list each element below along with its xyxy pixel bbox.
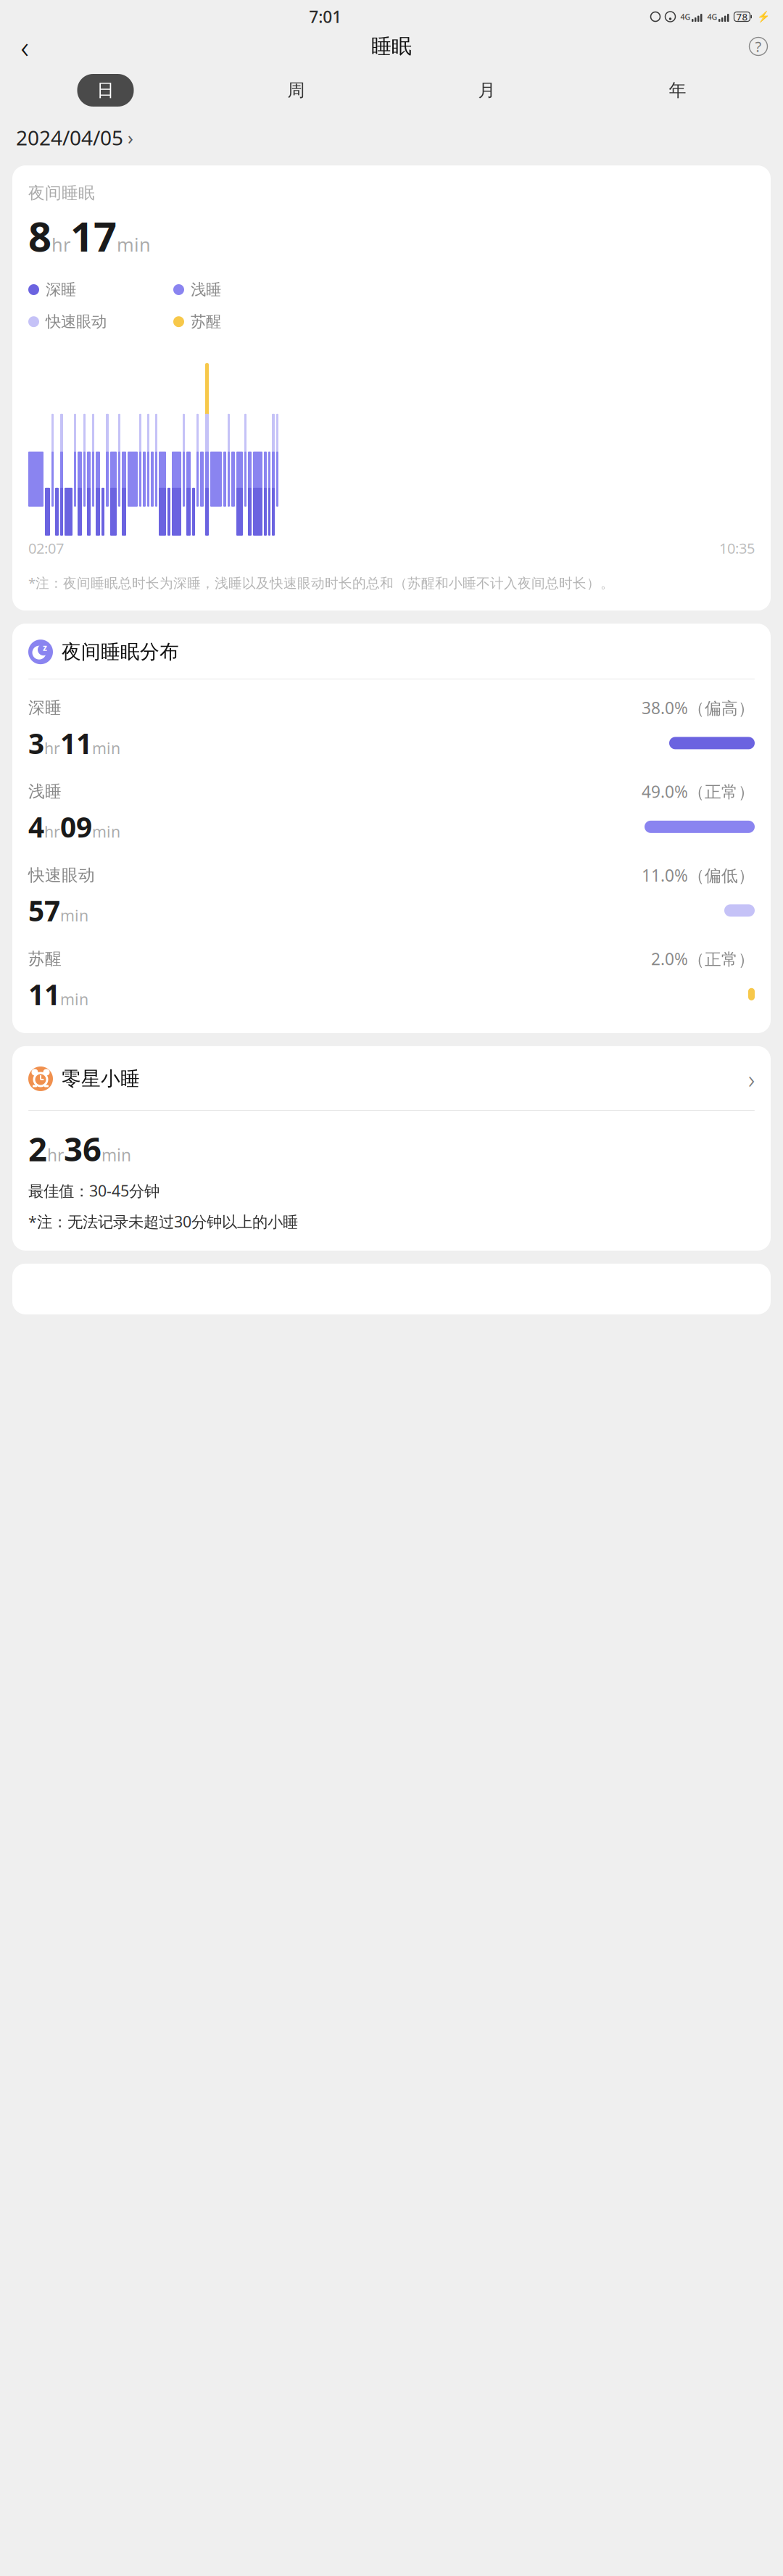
staticText: 09 [60,808,92,845]
staticText: › [748,1062,755,1095]
staticText: 最佳值：30-45分钟 [28,1180,159,1201]
staticText: min [101,1144,131,1166]
staticText: 快速眼动 [46,312,107,331]
button[interactable]: 周 [201,74,391,107]
staticText: 周 [287,80,305,101]
staticText: 深睡 [46,280,76,299]
staticText: 浅睡 [28,781,62,802]
button[interactable]: Back [9,30,41,62]
staticText: hr [44,821,60,842]
staticText: 3 [28,724,44,762]
staticText: 苏醒 [28,949,62,969]
staticText: min [60,989,88,1009]
staticText: z [43,642,47,653]
staticText: 17 [70,209,117,263]
staticText: 快速眼动 [28,865,95,885]
staticText: 8 [28,209,51,263]
staticText: 2.0%（正常） [651,948,755,970]
staticText: ⚡ [757,11,770,23]
button[interactable]: 零星小睡 [28,1046,755,1097]
button[interactable]: 月 [391,74,582,107]
staticText: 4 [28,808,44,845]
staticText: 11 [60,724,92,762]
staticText: › [128,125,133,150]
staticText: hr [44,738,60,758]
staticText: ? [755,37,762,56]
staticText: 浅睡 [191,280,221,299]
staticText: 02:07 [28,539,64,558]
button[interactable]: 2024/04/05 [0,107,783,157]
staticText: 11.0%（偏低） [642,864,755,886]
staticText: 49.0%（正常） [642,781,755,802]
staticText: *注：无法记录未超过30分钟以上的小睡 [28,1211,298,1232]
staticText: 睡眠 [371,34,412,59]
staticText: 4G [680,12,691,22]
staticText: 78 [736,10,748,23]
staticText: 36 [64,1127,101,1170]
staticText: 日 [97,80,114,101]
staticText: 月 [478,80,496,101]
staticText: 夜间睡眠分布 [62,640,179,664]
staticText: hr [51,232,70,257]
staticText: 4G [707,12,717,22]
staticText: 7:01 [309,6,342,28]
staticText: min [117,232,151,257]
staticText: 2024/04/05 [16,124,123,151]
button[interactable]: 年 [582,74,773,107]
staticText: 11 [28,976,60,1013]
staticText: 苏醒 [191,312,221,331]
staticText: hr [47,1144,64,1166]
staticText: *注：夜间睡眠总时长为深睡，浅睡以及快速眼动时长的总和（苏醒和小睡不计入夜间总时… [28,574,614,592]
staticText: min [60,905,88,926]
staticText: 2 [28,1127,47,1170]
staticText: 深睡 [28,698,62,718]
button[interactable]: Help [742,30,774,62]
staticText: ‹ [21,26,29,67]
staticText: 10:35 [719,539,755,558]
staticText: min [92,821,120,842]
staticText: 38.0%（偏高） [642,697,755,719]
staticText: min [92,738,120,758]
staticText: 零星小睡 [62,1067,140,1091]
staticText: 夜间睡眠 [28,183,95,203]
button[interactable]: 日 [10,74,201,107]
staticText: 57 [28,892,60,929]
staticText: 年 [669,80,686,101]
